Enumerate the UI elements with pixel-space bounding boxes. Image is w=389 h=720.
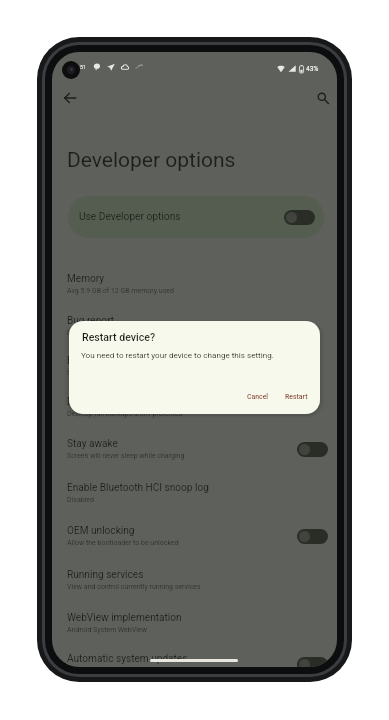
staticText: Desktop backup password — [67, 396, 186, 408]
button[interactable]: Enable Bluetooth HCI snoop log — [52, 471, 337, 514]
button[interactable]: Toggle — [297, 442, 328, 457]
staticText: Bug report shortcut — [67, 355, 155, 367]
button[interactable]: Toggle — [284, 210, 315, 225]
button[interactable]: Back — [58, 86, 82, 110]
button[interactable]: Stay awake — [52, 427, 337, 471]
button[interactable]: Memory — [52, 262, 337, 306]
staticText: Stay awake — [67, 438, 118, 450]
button[interactable]: Cancel — [243, 390, 273, 404]
staticText: Restart — [285, 393, 308, 401]
button[interactable]: Toggle — [297, 529, 328, 544]
button[interactable]: WebView implementation — [52, 602, 337, 643]
button[interactable]: Automatic system updates — [52, 643, 337, 667]
staticText: Restart device? — [82, 331, 156, 343]
staticText: Automatic system updates — [67, 653, 188, 665]
button[interactable]: Bug report — [52, 306, 337, 346]
staticText: Cancel — [247, 393, 269, 401]
staticText: Disabled — [67, 496, 95, 504]
button[interactable]: Restart — [281, 390, 312, 404]
button[interactable]: Toggle — [297, 657, 328, 667]
staticText: Bug report — [67, 315, 115, 327]
staticText: Desktop full backups aren't protected — [67, 410, 183, 418]
staticText: Developer options — [67, 148, 236, 173]
staticText: Use Developer options — [79, 211, 181, 223]
button[interactable]: Search — [311, 86, 335, 110]
staticText: Running services — [67, 569, 144, 581]
staticText: Show a button in the power menu — [67, 369, 171, 377]
staticText: Screen will never sleep while charging — [67, 452, 185, 460]
staticText: Developer build 1.0 — [67, 329, 127, 337]
button[interactable]: Running services — [52, 558, 337, 602]
staticText: 51 — [80, 64, 87, 70]
staticText: View and control currently running servi… — [67, 583, 201, 591]
staticText: Allow the bootloader to be unlocked — [67, 539, 179, 547]
staticText: WebView implementation — [67, 612, 182, 624]
staticText: Enable Bluetooth HCI snoop log — [67, 482, 209, 494]
staticText: Android System WebView — [67, 626, 147, 634]
button[interactable]: Bug report shortcut — [52, 346, 337, 386]
staticText: 43% — [306, 65, 319, 73]
staticText: OEM unlocking — [67, 525, 135, 537]
button[interactable]: Use Developer options — [68, 196, 324, 238]
staticText: Avg 5.9 GB of 12 GB memory used — [67, 287, 174, 295]
staticText: Memory — [67, 273, 105, 285]
staticText: You need to restart your device to chang… — [81, 350, 274, 359]
button[interactable]: OEM unlocking — [52, 514, 337, 558]
button[interactable]: Desktop backup password — [52, 386, 337, 427]
